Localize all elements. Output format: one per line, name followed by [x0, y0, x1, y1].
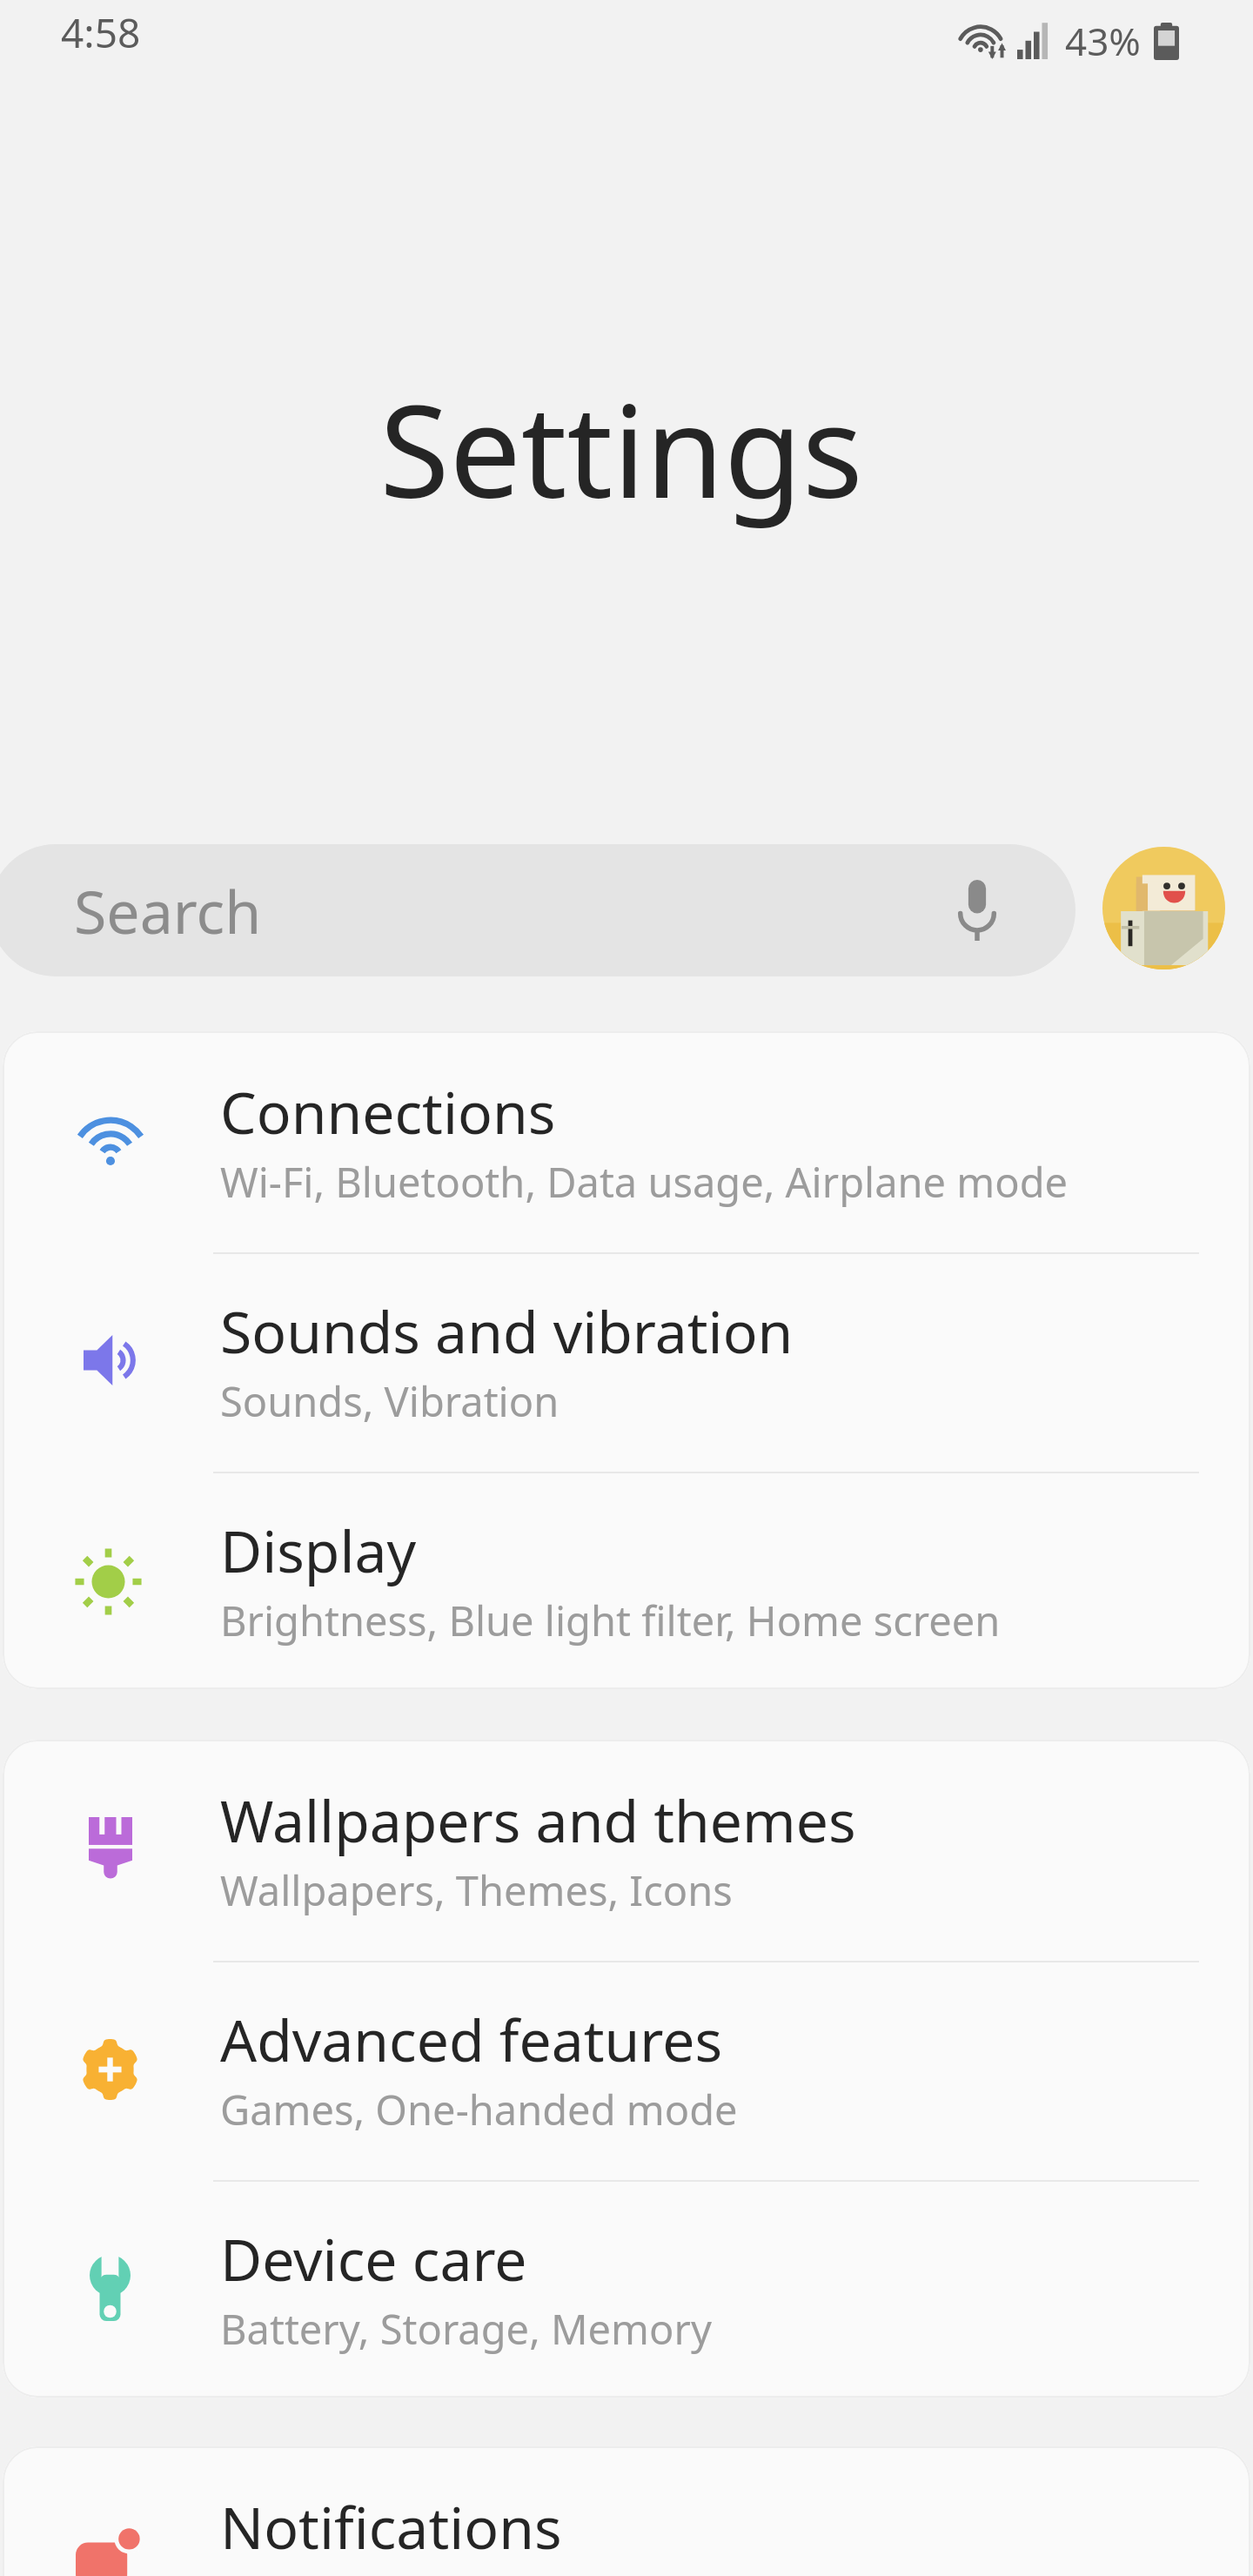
button[interactable]: Connections — [3, 1031, 1250, 1251]
staticText: Brightness, Blue light filter, Home scre… — [220, 1593, 1001, 1648]
staticText: Sounds and vibration — [220, 1291, 794, 1370]
button[interactable]: Wallpapers and themes — [3, 1740, 1250, 1959]
staticText: Wallpapers, Themes, Icons — [220, 1862, 733, 1918]
staticText: Search — [74, 870, 262, 951]
staticText: Wallpapers and themes — [220, 1781, 856, 1859]
button[interactable]: Display — [3, 1470, 1250, 1689]
staticText: Device care — [220, 2219, 527, 2298]
staticText: Display — [220, 1511, 417, 1589]
staticText: Advanced features — [220, 2000, 723, 2078]
button[interactable]: Sounds and vibration — [3, 1251, 1250, 1470]
staticText: Games, One-handed mode — [220, 2082, 738, 2137]
staticText: 43% — [1065, 15, 1141, 67]
staticText: Settings — [0, 362, 1248, 535]
button[interactable]: Search — [0, 844, 1075, 976]
staticText: Sounds, Vibration — [220, 1373, 559, 1429]
button[interactable]: Notifications — [3, 2446, 1250, 2576]
staticText: Notifications — [220, 2487, 562, 2566]
staticText: Connections — [220, 1072, 556, 1150]
staticText: Battery, Storage, Memory — [220, 2301, 712, 2357]
button[interactable]: Profile — [1102, 847, 1225, 969]
staticText: 4:58 — [61, 5, 141, 60]
button[interactable]: Device care — [3, 2178, 1250, 2398]
button[interactable]: Advanced features — [3, 1959, 1250, 2178]
button[interactable]: Voice search — [933, 865, 1023, 956]
staticText: Wi-Fi, Bluetooth, Data usage, Airplane m… — [220, 1154, 1069, 1210]
